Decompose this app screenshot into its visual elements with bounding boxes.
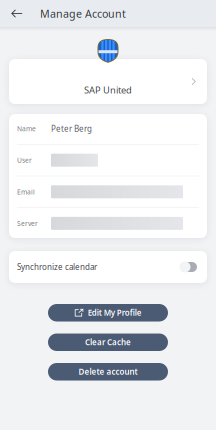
staticText: Synchronize calendar [17, 262, 97, 272]
button[interactable]: SAP United [9, 59, 207, 104]
button[interactable]: Delete account [48, 363, 168, 380]
staticText: Clear Cache [85, 337, 131, 347]
staticText: Peter Berg [51, 123, 92, 134]
staticText: User [17, 156, 32, 165]
staticText: SAP United [84, 84, 132, 96]
staticText: Delete account [78, 366, 137, 377]
button[interactable]: Synchronize calendar [180, 261, 197, 272]
button[interactable]: Back [0, 0, 34, 27]
staticText: Edit My Profile [88, 307, 142, 318]
staticText: Name [17, 124, 36, 133]
staticText: Manage Account [40, 6, 126, 21]
button[interactable]: Clear Cache [48, 333, 168, 351]
staticText: Server [17, 219, 38, 228]
button[interactable]: Edit My Profile [48, 304, 168, 321]
staticText: Email [17, 187, 35, 196]
